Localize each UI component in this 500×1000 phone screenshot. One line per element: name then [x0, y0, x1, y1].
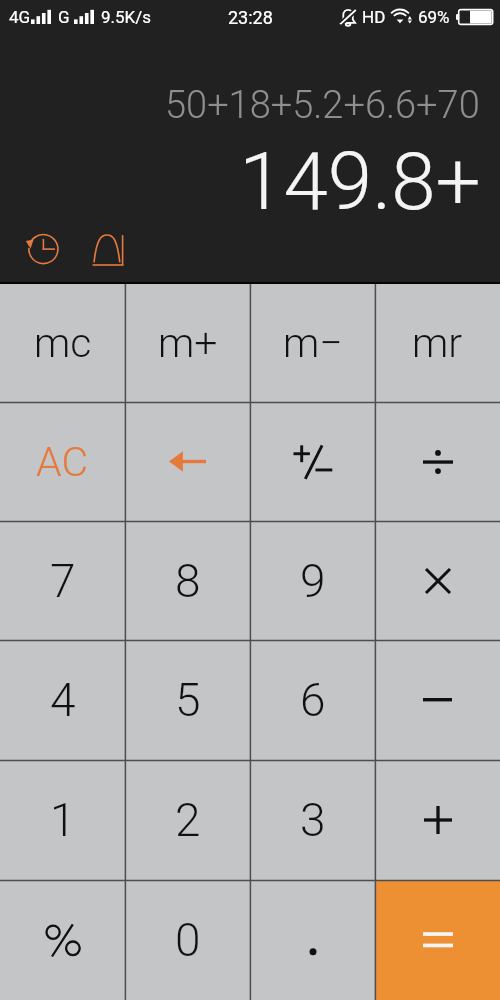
staticText: 2: [175, 793, 201, 847]
button[interactable]: Equals: [375, 880, 500, 1000]
staticText: 8: [175, 554, 201, 608]
button[interactable]: 3: [250, 760, 375, 880]
button[interactable]: AC: [0, 402, 125, 521]
button[interactable]: Decimal point: [250, 880, 375, 1000]
staticText: HD: [362, 7, 386, 27]
button[interactable]: Multiply: [375, 521, 500, 640]
staticText: G: [58, 7, 70, 27]
staticText: 50+18+5.2+6.6+70: [165, 83, 480, 128]
staticText: 69%: [418, 7, 450, 27]
staticText: 9.5K/s: [101, 7, 152, 27]
button[interactable]: mc: [0, 283, 125, 402]
button[interactable]: 9: [250, 521, 375, 640]
button[interactable]: Plus: [375, 760, 500, 880]
staticText: 6: [300, 673, 326, 727]
button[interactable]: History: [24, 229, 64, 269]
button[interactable]: Backspace: [125, 402, 250, 521]
staticText: AC: [36, 438, 89, 486]
staticText: m−: [283, 319, 343, 367]
button[interactable]: 6: [250, 640, 375, 760]
staticText: 4: [50, 673, 76, 727]
button[interactable]: mr: [375, 283, 500, 402]
staticText: 0: [175, 913, 201, 967]
button[interactable]: Divide: [375, 402, 500, 521]
button[interactable]: 2: [125, 760, 250, 880]
button[interactable]: m+: [125, 283, 250, 402]
button[interactable]: Graph: [88, 229, 128, 269]
button[interactable]: m−: [250, 283, 375, 402]
staticText: mc: [34, 319, 92, 367]
button[interactable]: Percent: [0, 880, 125, 1000]
button[interactable]: Minus: [375, 640, 500, 760]
staticText: 1: [50, 793, 76, 847]
staticText: 5: [175, 673, 201, 727]
staticText: 9: [300, 554, 326, 608]
staticText: 4G: [9, 7, 31, 27]
button[interactable]: 1: [0, 760, 125, 880]
staticText: 3: [300, 793, 326, 847]
staticText: mr: [412, 319, 463, 367]
staticText: 7: [50, 554, 76, 608]
staticText: 23:28: [228, 7, 273, 28]
button[interactable]: 5: [125, 640, 250, 760]
button[interactable]: 0: [125, 880, 250, 1000]
button[interactable]: Plus minus: [250, 402, 375, 521]
button[interactable]: 4: [0, 640, 125, 760]
staticText: m+: [158, 319, 218, 367]
staticText: 149.8+: [239, 135, 481, 229]
button[interactable]: 8: [125, 521, 250, 640]
button[interactable]: 7: [0, 521, 125, 640]
